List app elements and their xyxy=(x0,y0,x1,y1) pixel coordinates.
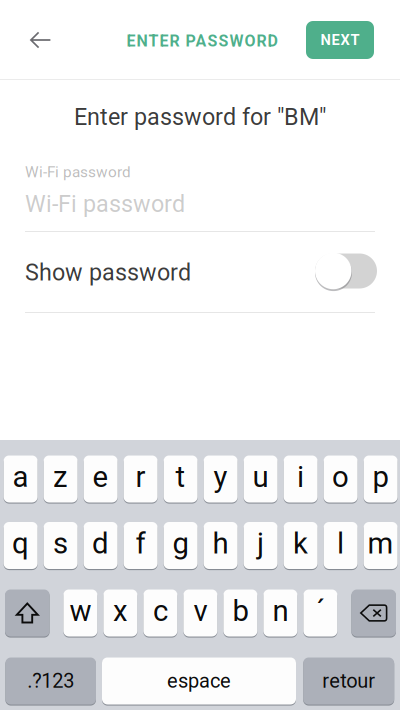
button[interactable]: m xyxy=(364,522,398,571)
button[interactable]: Shift xyxy=(5,589,50,639)
button[interactable]: d xyxy=(84,522,118,571)
button[interactable]: b xyxy=(223,589,257,639)
button[interactable]: .?123 xyxy=(5,657,96,707)
staticText: .?123 xyxy=(27,669,74,693)
staticText: v xyxy=(193,594,207,628)
button[interactable]: q xyxy=(4,522,38,571)
button[interactable]: NEXT xyxy=(306,21,374,59)
button[interactable]: l xyxy=(324,522,358,571)
staticText: Enter password for "BM" xyxy=(74,103,326,131)
button[interactable]: f xyxy=(124,522,158,571)
staticText: d xyxy=(92,526,109,561)
button[interactable]: x xyxy=(103,589,137,639)
button[interactable]: s xyxy=(44,522,78,571)
staticText: Wi-Fi password xyxy=(25,163,131,181)
staticText: w xyxy=(69,594,91,628)
button[interactable]: j xyxy=(244,522,278,571)
staticText: t xyxy=(176,460,186,494)
staticText: k xyxy=(293,526,308,561)
staticText: m xyxy=(368,526,394,561)
staticText: j xyxy=(257,526,264,561)
staticText: Wi-Fi password xyxy=(25,190,185,218)
button[interactable]: w xyxy=(63,589,97,639)
staticText: f xyxy=(136,526,146,561)
button[interactable]: o xyxy=(324,455,358,505)
staticText: g xyxy=(173,526,189,561)
staticText: o xyxy=(332,460,349,494)
staticText: retour xyxy=(322,669,375,693)
staticText: c xyxy=(153,594,168,628)
staticText: u xyxy=(253,460,269,494)
button[interactable]: k xyxy=(284,522,318,571)
staticText: b xyxy=(232,594,248,628)
button[interactable]: u xyxy=(244,455,278,505)
staticText: ENTER PASSWORD xyxy=(126,32,277,50)
button[interactable]: retour xyxy=(303,657,394,707)
staticText: h xyxy=(213,526,229,561)
button[interactable]: Back xyxy=(12,12,68,68)
button[interactable]: p xyxy=(364,455,398,505)
button[interactable]: y xyxy=(204,455,238,505)
staticText: a xyxy=(13,460,29,494)
button[interactable]: Show password xyxy=(315,250,379,292)
button[interactable]: t xyxy=(164,455,198,505)
staticText: p xyxy=(373,460,389,494)
button[interactable]: v xyxy=(183,589,217,639)
staticText: r xyxy=(136,460,146,494)
button[interactable]: z xyxy=(44,455,78,505)
staticText: e xyxy=(93,460,109,494)
staticText: NEXT xyxy=(320,31,359,49)
button[interactable]: e xyxy=(84,455,118,505)
button[interactable]: r xyxy=(124,455,158,505)
staticText: espace xyxy=(167,669,231,693)
staticText: Show password xyxy=(25,259,191,286)
staticText: q xyxy=(12,526,29,561)
staticText: l xyxy=(337,526,344,561)
staticText: i xyxy=(297,460,304,494)
staticText: ´ xyxy=(316,594,325,628)
button[interactable]: n xyxy=(263,589,297,639)
button[interactable]: i xyxy=(284,455,318,505)
button[interactable]: h xyxy=(204,522,238,571)
button[interactable]: ´ xyxy=(303,589,337,639)
button[interactable]: Delete xyxy=(351,589,396,639)
staticText: x xyxy=(113,594,128,628)
staticText: n xyxy=(272,594,288,628)
button[interactable]: g xyxy=(164,522,198,571)
staticText: z xyxy=(53,460,68,494)
button[interactable]: c xyxy=(143,589,177,639)
button[interactable]: espace xyxy=(102,657,296,707)
button[interactable]: a xyxy=(4,455,38,505)
staticText: y xyxy=(214,460,228,494)
staticText: s xyxy=(53,526,68,561)
